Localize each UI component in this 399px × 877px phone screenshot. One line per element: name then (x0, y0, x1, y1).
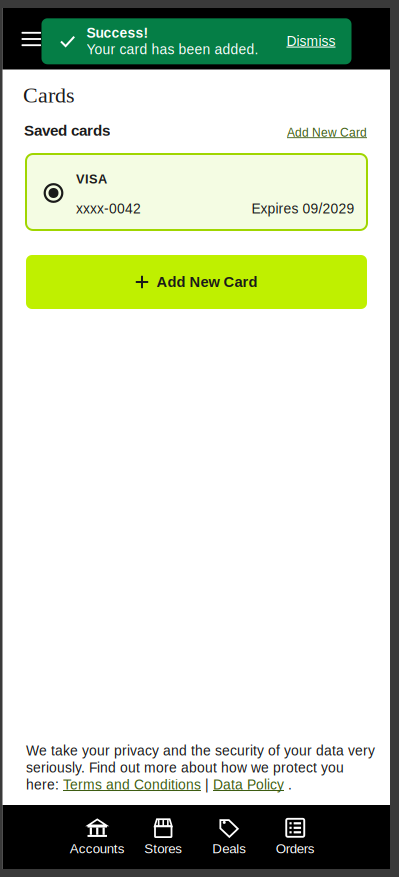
staticText: Cards (23, 83, 75, 107)
button[interactable]: Dismiss (286, 34, 335, 49)
button[interactable]: VISA (26, 154, 367, 230)
button[interactable]: Add New Card (287, 126, 367, 139)
button[interactable]: Data Policy (213, 777, 284, 792)
staticText: Orders (276, 841, 315, 856)
staticText: Your card has been added. (86, 42, 258, 57)
staticText: Deals (212, 841, 246, 856)
button[interactable]: Deals (196, 813, 262, 861)
staticText: | (201, 777, 213, 792)
staticText: Terms and Conditions (63, 777, 201, 792)
button[interactable]: Orders (262, 813, 328, 861)
staticText: Expires 09/2029 (251, 201, 354, 216)
button[interactable]: Stores (130, 813, 196, 861)
staticText: . (284, 777, 292, 792)
button[interactable]: Terms and Conditions (63, 777, 201, 792)
staticText: seriously. Find out more about how we pr… (26, 760, 344, 775)
staticText: Dismiss (286, 34, 335, 49)
staticText: Add New Card (156, 274, 257, 290)
button[interactable]: Menu (19, 29, 43, 49)
staticText: xxxx-0042 (76, 201, 141, 216)
staticText: We take your privacy and the security of… (26, 743, 375, 758)
staticText: Saved cards (24, 122, 110, 139)
button[interactable]: Accounts (64, 813, 130, 861)
staticText: VISA (76, 172, 107, 186)
button[interactable]: Add New Card (26, 255, 367, 309)
staticText: Accounts (70, 841, 125, 856)
staticText: here: (26, 777, 63, 792)
staticText: Stores (144, 841, 182, 856)
staticText: Data Policy (213, 777, 284, 792)
staticText: Success! (86, 25, 148, 41)
staticText: Add New Card (287, 126, 367, 139)
